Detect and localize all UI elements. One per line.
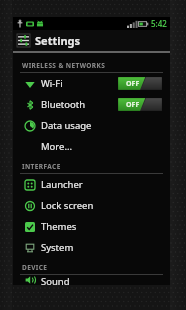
staticText: Settings [35, 33, 81, 48]
button[interactable]: Settings [13, 30, 170, 51]
button[interactable]: Toggle off [118, 98, 162, 111]
staticText: Wi-Fi [41, 77, 118, 90]
staticText: More... [41, 140, 73, 153]
button[interactable]: System [13, 237, 170, 258]
staticText: System [41, 241, 74, 254]
staticText: Bluetooth [41, 98, 118, 111]
button[interactable]: Themes [13, 216, 170, 237]
staticText: Lock screen [41, 199, 94, 212]
staticText: INTERFACE [22, 162, 61, 171]
button[interactable]: Lock screen [13, 195, 170, 216]
staticText: OFF [126, 79, 140, 89]
staticText: Themes [41, 220, 77, 233]
button[interactable]: Sound [13, 275, 170, 285]
button[interactable]: Data usage [13, 115, 170, 136]
staticText: Sound [41, 275, 70, 285]
staticText: OFF [126, 100, 140, 110]
button[interactable]: Toggle off [118, 77, 162, 90]
staticText: 5:42 [151, 18, 167, 29]
staticText: Launcher [41, 178, 83, 191]
staticText: Data usage [41, 119, 92, 132]
staticText: WIRELESS & NETWORKS [22, 61, 106, 70]
button[interactable]: Wi-Fi [13, 73, 170, 94]
button[interactable]: Launcher [13, 174, 170, 195]
button[interactable]: Bluetooth [13, 94, 170, 115]
button[interactable]: More... [13, 136, 170, 157]
staticText: DEVICE [22, 263, 48, 272]
